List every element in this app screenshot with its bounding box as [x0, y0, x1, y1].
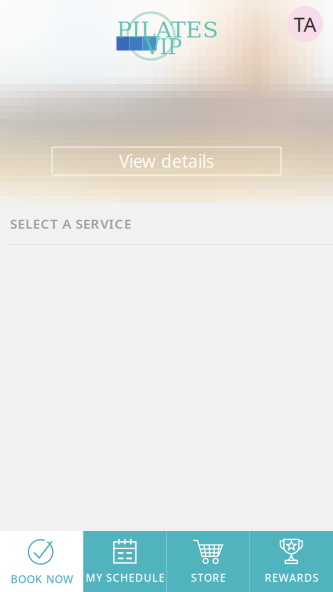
staticText: PILATES	[116, 16, 218, 43]
staticText: SELECT A SERVICE	[10, 215, 131, 232]
button[interactable]: View details	[52, 147, 281, 175]
staticText: VIP	[144, 34, 181, 59]
staticText: REWARDS	[264, 570, 318, 585]
staticText: BOOK NOW	[10, 572, 73, 586]
button[interactable]: STORE	[166, 531, 250, 592]
button[interactable]: Profile	[283, 2, 327, 46]
button[interactable]: MY SCHEDULE	[83, 531, 166, 592]
staticText: TA	[293, 11, 316, 37]
staticText: View details	[119, 149, 214, 172]
staticText: STORE	[191, 570, 226, 585]
button[interactable]: REWARDS	[250, 531, 333, 592]
button[interactable]: BOOK NOW	[0, 531, 83, 592]
staticText: MY SCHEDULE	[85, 570, 164, 585]
